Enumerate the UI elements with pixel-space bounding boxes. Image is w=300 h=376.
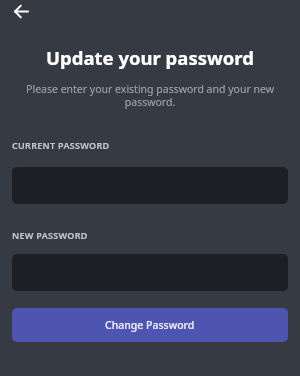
- button[interactable]: [11, 1, 32, 22]
- staticText: CURRENT PASSWORD: [12, 139, 110, 151]
- staticText: Change Password: [105, 318, 195, 332]
- staticText: NEW PASSWORD: [12, 229, 88, 241]
- button[interactable]: Change Password: [12, 308, 288, 342]
- staticText: Update your password: [0, 45, 300, 70]
- staticText: Please enter your existing password and …: [0, 82, 300, 109]
